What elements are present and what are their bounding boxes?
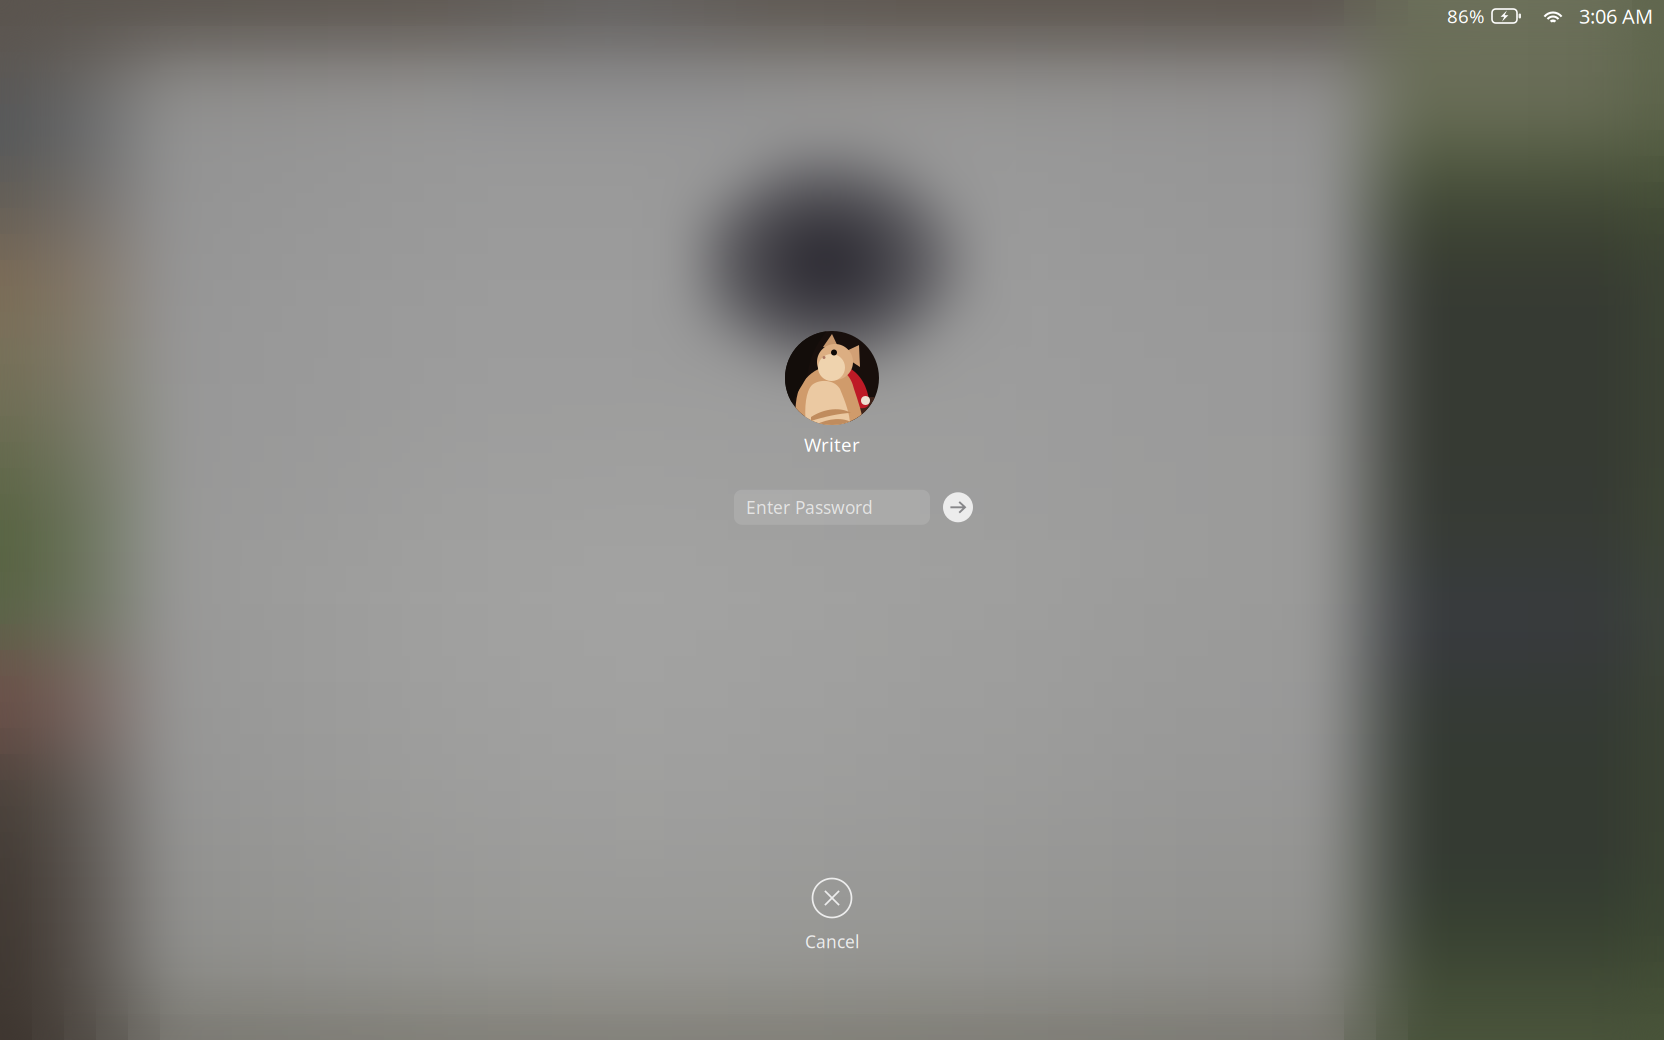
staticText: 3:06 AM	[1579, 3, 1653, 29]
staticText: Writer	[804, 432, 860, 457]
staticText: Cancel	[805, 930, 859, 953]
staticText: 86%	[1447, 4, 1485, 28]
button[interactable]: Log in	[943, 492, 973, 522]
button[interactable]: Enter Password	[734, 490, 930, 525]
button[interactable]: Cancel	[805, 878, 859, 953]
staticText: Enter Password	[746, 496, 873, 519]
